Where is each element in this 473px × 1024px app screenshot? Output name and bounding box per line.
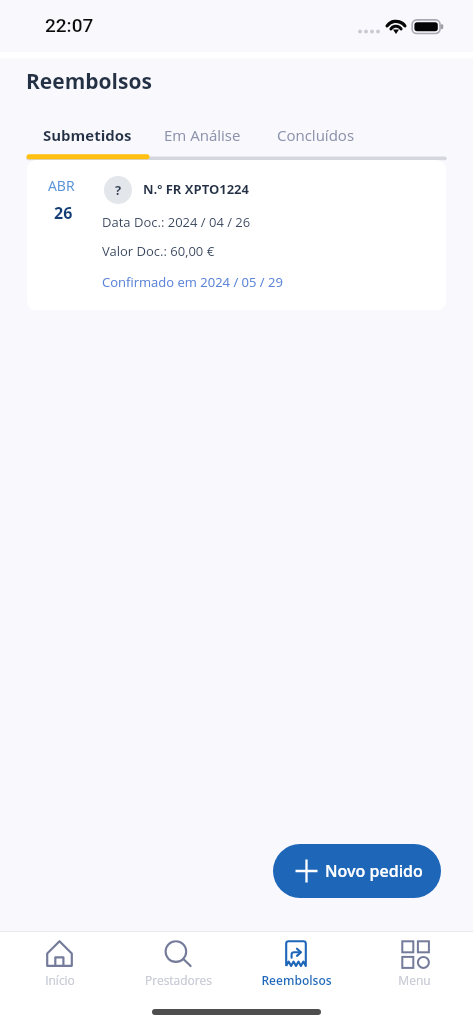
staticText: Em Análise	[164, 125, 241, 145]
other: Prestadores	[165, 940, 192, 967]
staticText: ABR	[48, 176, 75, 195]
button[interactable]: Estado do pedido	[104, 176, 132, 204]
button[interactable]: Concluídos	[277, 125, 355, 145]
staticText: Novo pedido	[325, 860, 423, 882]
staticText: Valor Doc.: 60,00 €	[102, 242, 215, 260]
other: Início	[46, 940, 73, 967]
staticText: Início	[45, 972, 75, 988]
other: Reembolsos	[285, 940, 307, 967]
staticText: Reembolsos	[26, 67, 152, 96]
button[interactable]: Submetidos	[43, 125, 132, 145]
staticText: Menu	[398, 972, 431, 988]
button[interactable]: Prestadores	[119, 932, 237, 1000]
button[interactable]: Novo pedido	[273, 844, 441, 898]
staticText: Concluídos	[277, 125, 355, 145]
staticText: Submetidos	[43, 125, 132, 145]
staticText: ?	[115, 181, 122, 199]
button[interactable]: Início	[0, 932, 119, 1000]
staticText: Confirmado em 2024 / 05 / 29	[102, 273, 283, 291]
button[interactable]: Menu	[355, 932, 473, 1000]
button[interactable]: Em Análise	[164, 125, 241, 145]
staticText: N.º FR XPTO1224	[143, 180, 249, 198]
staticText: Prestadores	[145, 972, 212, 988]
staticText: Data Doc.: 2024 / 04 / 26	[102, 213, 251, 231]
button[interactable]: Reembolsos	[237, 932, 355, 1000]
staticText: Reembolsos	[261, 972, 332, 988]
staticText: 26	[54, 202, 73, 224]
staticText: 22:07	[45, 14, 94, 36]
other: Menu	[401, 940, 428, 967]
button[interactable]: ABR	[27, 160, 446, 310]
